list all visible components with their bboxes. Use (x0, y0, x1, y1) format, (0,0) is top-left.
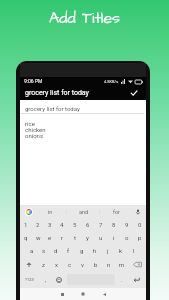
staticText: ?123 (25, 277, 34, 282)
button[interactable]: d (50, 244, 62, 257)
button[interactable]: Shift (20, 257, 37, 271)
staticText: for (113, 209, 120, 215)
staticText: r (61, 234, 64, 241)
staticText: o (125, 234, 129, 241)
button[interactable]: a (26, 244, 38, 257)
button[interactable]: 9 (120, 218, 133, 231)
staticText: a (30, 247, 34, 254)
staticText: l (133, 247, 135, 254)
button[interactable]: h (88, 244, 101, 257)
staticText: j (107, 247, 109, 254)
staticText: p (138, 234, 142, 241)
button[interactable]: , (39, 271, 53, 288)
button[interactable]: Recents (55, 288, 69, 300)
staticText: Add Titles (0, 7, 169, 29)
staticText: 4.8KB/s (104, 79, 119, 84)
button[interactable]: j (101, 244, 114, 257)
staticText: z (42, 261, 45, 268)
button[interactable]: Emoji (53, 271, 65, 288)
button[interactable]: Enter (127, 271, 146, 288)
button[interactable]: 0 (133, 218, 146, 231)
button[interactable]: u (94, 231, 107, 244)
staticText: k (119, 247, 123, 254)
staticText: u (99, 234, 103, 241)
staticText: g (80, 247, 84, 254)
staticText: s (42, 247, 46, 254)
button[interactable]: q (20, 231, 32, 244)
button[interactable]: Google (25, 208, 33, 216)
button[interactable]: Home (76, 288, 90, 300)
button[interactable]: w (32, 231, 44, 244)
button[interactable]: 3 (44, 218, 56, 231)
staticText: 0 (138, 221, 142, 228)
button[interactable]: 1 (20, 218, 32, 231)
button[interactable]: z (37, 257, 50, 271)
staticText: e (48, 234, 52, 241)
button[interactable]: in (33, 205, 67, 218)
staticText: c (68, 261, 72, 268)
staticText: 9 (125, 221, 129, 228)
button[interactable]: x (50, 257, 63, 271)
button[interactable]: ?123 (20, 271, 39, 288)
button[interactable]: Back (97, 288, 111, 300)
button[interactable]: 4 (56, 218, 68, 231)
staticText: 2 (36, 221, 40, 228)
staticText: w (36, 234, 41, 241)
button[interactable]: Voice input (130, 205, 146, 218)
button[interactable]: e (44, 231, 56, 244)
staticText: grocery list for today (25, 89, 127, 97)
staticText: . (121, 276, 123, 283)
staticText: v (81, 261, 84, 268)
button[interactable]: s (38, 244, 50, 257)
button[interactable]: 7 (94, 218, 107, 231)
staticText: n (107, 261, 111, 268)
staticText: 4 (60, 221, 64, 228)
staticText: and (79, 209, 89, 215)
staticText: f (67, 247, 70, 254)
staticText: in (48, 209, 53, 215)
button[interactable]: t (68, 231, 81, 244)
button[interactable]: r (56, 231, 68, 244)
staticText: m (119, 261, 125, 268)
staticText: rice chicken onions (25, 120, 46, 139)
button[interactable]: l (127, 244, 140, 257)
staticText: 6 (86, 221, 90, 228)
button[interactable]: k (114, 244, 127, 257)
button[interactable]: Google (20, 205, 38, 218)
button[interactable]: Backspace (128, 257, 146, 271)
button[interactable]: i (107, 231, 120, 244)
staticText: x (55, 261, 58, 268)
staticText: 1 (24, 221, 28, 228)
staticText: q (24, 234, 28, 241)
button[interactable]: for (100, 205, 133, 218)
button[interactable]: v (76, 257, 89, 271)
button[interactable]: m (115, 257, 128, 271)
button[interactable]: 6 (81, 218, 94, 231)
button[interactable]: 5 (68, 218, 81, 231)
button[interactable]: b (89, 257, 102, 271)
button[interactable]: o (120, 231, 133, 244)
button[interactable]: Save (127, 86, 141, 100)
button[interactable]: and (67, 205, 100, 218)
button[interactable]: p (133, 231, 146, 244)
staticText: , (45, 276, 47, 283)
staticText: 9:06 PM (24, 78, 43, 84)
button[interactable]: c (63, 257, 76, 271)
staticText: d (54, 247, 58, 254)
staticText: 7 (99, 221, 103, 228)
button[interactable]: f (62, 244, 75, 257)
button[interactable]: 8 (107, 218, 120, 231)
button[interactable]: g (75, 244, 88, 257)
staticText: grocery list for today (25, 105, 80, 112)
button[interactable]: n (102, 257, 115, 271)
staticText: 3 (48, 221, 52, 228)
button[interactable]: y (81, 231, 94, 244)
staticText: y (86, 234, 89, 241)
button[interactable]: 2 (32, 218, 44, 231)
staticText: t (74, 234, 76, 241)
staticText: h (93, 247, 97, 254)
staticText: 5 (73, 221, 77, 228)
staticText: 8 (112, 221, 116, 228)
